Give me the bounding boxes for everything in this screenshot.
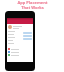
button[interactable] [8,54,19,56]
button[interactable] [23,32,32,34]
button[interactable] [8,48,19,50]
button[interactable] [23,35,32,37]
button[interactable] [8,51,19,53]
button[interactable] [23,38,32,40]
button[interactable] [7,18,33,24]
staticText: App Placement [17,0,48,5]
staticText: That Works [21,5,44,10]
button[interactable] [8,25,22,29]
